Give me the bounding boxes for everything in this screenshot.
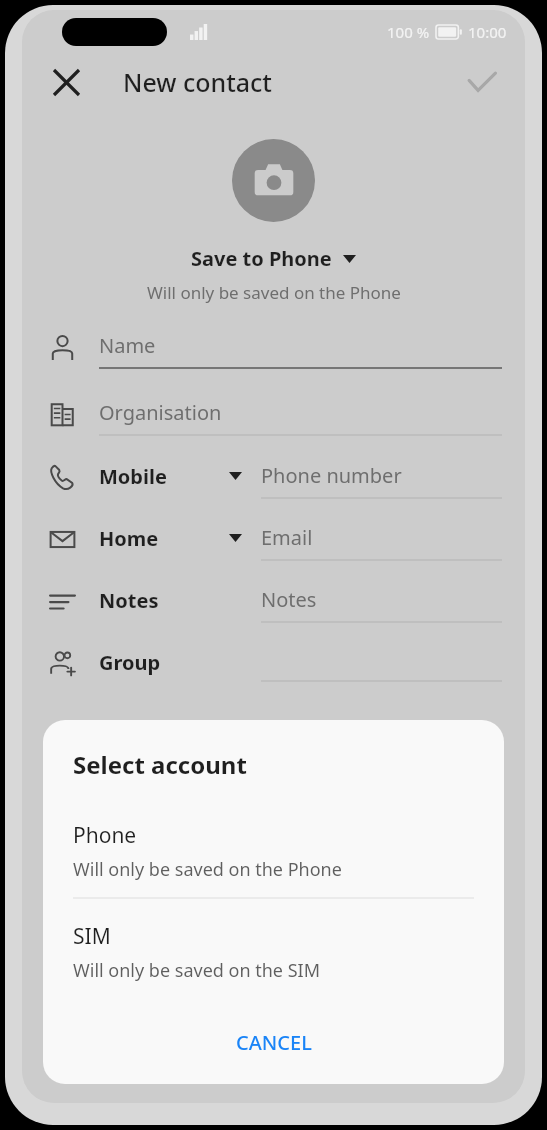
button[interactable]: Save to Phone [183,243,364,274]
staticText: Name [99,332,156,359]
button[interactable]: Group [22,648,525,683]
staticText: Notes [99,587,159,614]
staticText: Will only be saved on the Phone [73,857,342,882]
staticText: Select account [73,748,247,781]
staticText: Will only be saved on the SIM [73,958,320,983]
staticText: Organisation [99,399,222,426]
staticText: 10:00 [468,22,507,42]
staticText: Group [99,649,161,676]
button[interactable]: Mobile [22,462,525,500]
button[interactable]: Add photo [232,139,315,222]
staticText: Mobile [99,463,167,490]
staticText: CANCEL [236,1029,312,1056]
staticText: Phone number [261,462,402,489]
staticText: 100 % [387,22,430,42]
button[interactable]: Save [459,59,505,105]
button[interactable]: Close [42,58,90,106]
button[interactable]: SIM [73,922,474,983]
staticText: SIM [73,922,111,951]
button[interactable]: Organisation [22,399,525,437]
button[interactable]: Phone [73,821,474,882]
button[interactable]: CANCEL [73,1021,474,1064]
staticText: Email [261,524,313,551]
button[interactable]: Home [22,524,525,562]
button[interactable]: Notes [22,586,525,624]
staticText: Home [99,525,159,552]
staticText: Phone [73,821,137,850]
staticText: Save to Phone [191,245,332,272]
staticText: New contact [123,65,272,99]
staticText: Notes [261,586,317,613]
staticText: Will only be saved on the Phone [147,281,401,304]
button[interactable]: Name [22,332,525,370]
